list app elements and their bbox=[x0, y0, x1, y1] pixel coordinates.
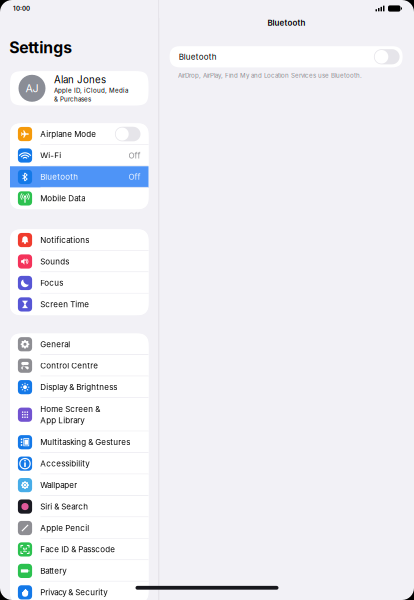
staticText: Mobile Data bbox=[40, 194, 85, 203]
staticText: 10:00 bbox=[13, 5, 30, 12]
button[interactable]: Focus bbox=[10, 272, 148, 294]
staticText: Apple ID, iCloud, Media bbox=[54, 87, 128, 94]
staticText: Bluetooth bbox=[268, 18, 306, 28]
button[interactable]: Apple Pencil bbox=[10, 517, 148, 539]
button[interactable]: Airplane Mode bbox=[10, 123, 148, 145]
staticText: Airplane Mode bbox=[40, 129, 96, 139]
button[interactable]: Mobile Data bbox=[10, 188, 148, 209]
button[interactable]: Wallpaper bbox=[10, 474, 148, 496]
staticText: Siri & Search bbox=[40, 502, 88, 511]
button[interactable]: Display & Brightness bbox=[10, 376, 148, 398]
staticText: Bluetooth bbox=[179, 52, 217, 62]
staticText: AJ bbox=[25, 82, 38, 95]
staticText: Bluetooth bbox=[40, 172, 78, 182]
button[interactable]: Home Screen & bbox=[10, 398, 148, 431]
button[interactable]: Bluetooth bbox=[374, 49, 400, 64]
button[interactable]: Bluetooth bbox=[10, 166, 148, 188]
button[interactable]: Screen Time bbox=[10, 294, 148, 315]
button[interactable]: Multitasking & Gestures bbox=[10, 431, 148, 453]
button[interactable]: Sounds bbox=[10, 251, 148, 272]
button[interactable]: AJ bbox=[0, 71, 158, 105]
staticText: Wi-Fi bbox=[40, 151, 61, 160]
staticText: AirDrop, AirPlay, Find My and Location S… bbox=[178, 72, 362, 79]
staticText: Sounds bbox=[40, 257, 69, 266]
staticText: Screen Time bbox=[40, 300, 89, 309]
button[interactable]: Accessibility bbox=[10, 453, 148, 474]
staticText: Privacy & Security bbox=[40, 587, 107, 597]
button[interactable]: General bbox=[10, 333, 148, 355]
staticText: Alan Jones bbox=[54, 74, 106, 85]
staticText: Settings bbox=[9, 38, 72, 57]
staticText: Notifications bbox=[40, 235, 89, 245]
staticText: Home Screen & bbox=[40, 404, 100, 414]
staticText: Display & Brightness bbox=[40, 382, 117, 392]
staticText: Battery bbox=[40, 566, 66, 576]
staticText: General bbox=[40, 339, 70, 349]
staticText: Off bbox=[128, 172, 140, 182]
staticText: Control Centre bbox=[40, 361, 98, 371]
staticText: App Library bbox=[40, 415, 84, 425]
staticText: Apple Pencil bbox=[40, 523, 89, 533]
staticText: Wallpaper bbox=[40, 480, 77, 490]
button[interactable]: Battery bbox=[10, 560, 148, 582]
staticText: Multitasking & Gestures bbox=[40, 437, 130, 447]
staticText: Accessibility bbox=[40, 459, 89, 468]
staticText: Focus bbox=[40, 278, 63, 288]
staticText: Face ID & Passcode bbox=[40, 545, 115, 554]
button[interactable]: Siri & Search bbox=[10, 496, 148, 517]
button[interactable]: Face ID & Passcode bbox=[10, 539, 148, 560]
button[interactable]: Control Centre bbox=[10, 355, 148, 376]
staticText: Off bbox=[128, 151, 140, 160]
button[interactable]: Notifications bbox=[10, 229, 148, 251]
staticText: & Purchases bbox=[54, 95, 91, 103]
button[interactable]: Wi-Fi bbox=[10, 145, 148, 166]
button[interactable]: Privacy & Security bbox=[10, 582, 148, 600]
